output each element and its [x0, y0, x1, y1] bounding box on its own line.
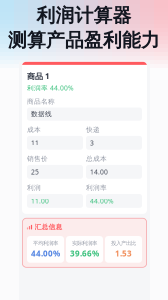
staticText: 成本 — [27, 126, 41, 134]
staticText: 利润计算器 — [36, 4, 131, 27]
staticText: 数据线 — [31, 110, 52, 118]
staticText: 总成本 — [86, 155, 107, 163]
staticText: 利润率 44.00% — [27, 83, 74, 92]
staticText: 44.00% — [90, 196, 114, 205]
staticText: 商品 1 — [27, 71, 50, 81]
staticText: 1.53 — [115, 248, 132, 259]
staticText: 汇总信息 — [34, 223, 62, 231]
staticText: 快递 — [86, 126, 100, 134]
staticText: 利润 — [27, 184, 41, 192]
staticText: 投入产出比 — [111, 240, 136, 247]
staticText: 测算产品盈利能力 — [8, 29, 160, 52]
staticText: 11.00 — [31, 196, 49, 205]
staticText: 利润率 — [86, 184, 107, 192]
staticText: 实际利润率 — [72, 240, 97, 247]
staticText: 39.66% — [70, 248, 99, 259]
staticText: 商品名称 — [27, 97, 55, 105]
staticText: 44.00% — [31, 248, 60, 259]
staticText: 3 — [90, 138, 94, 147]
staticText: 平均利润率 — [33, 240, 58, 247]
staticText: 销售价 — [27, 155, 48, 163]
staticText: 14.00 — [90, 167, 108, 176]
staticText: 25 — [31, 167, 39, 176]
staticText: 11 — [31, 138, 39, 147]
